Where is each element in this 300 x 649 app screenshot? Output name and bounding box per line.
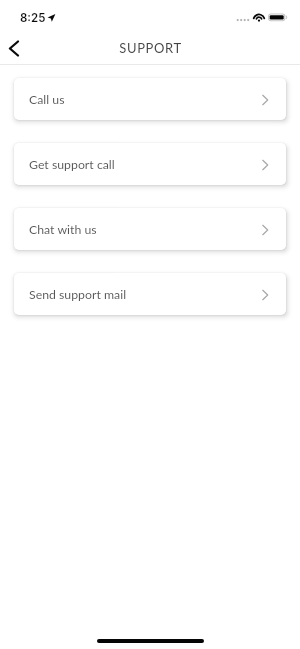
button[interactable]: Back (0, 30, 30, 64)
button[interactable]: Chat with us (14, 208, 286, 250)
staticText: Call us (29, 92, 65, 107)
staticText: Chat with us (29, 222, 97, 237)
staticText: Get support call (29, 157, 115, 172)
button[interactable]: Get support call (14, 143, 286, 185)
button[interactable]: Call us (14, 78, 286, 120)
staticText: Send support mail (29, 287, 127, 302)
staticText: 8:25 (20, 11, 46, 25)
button[interactable]: Send support mail (14, 273, 286, 315)
staticText: SUPPORT (119, 40, 182, 56)
